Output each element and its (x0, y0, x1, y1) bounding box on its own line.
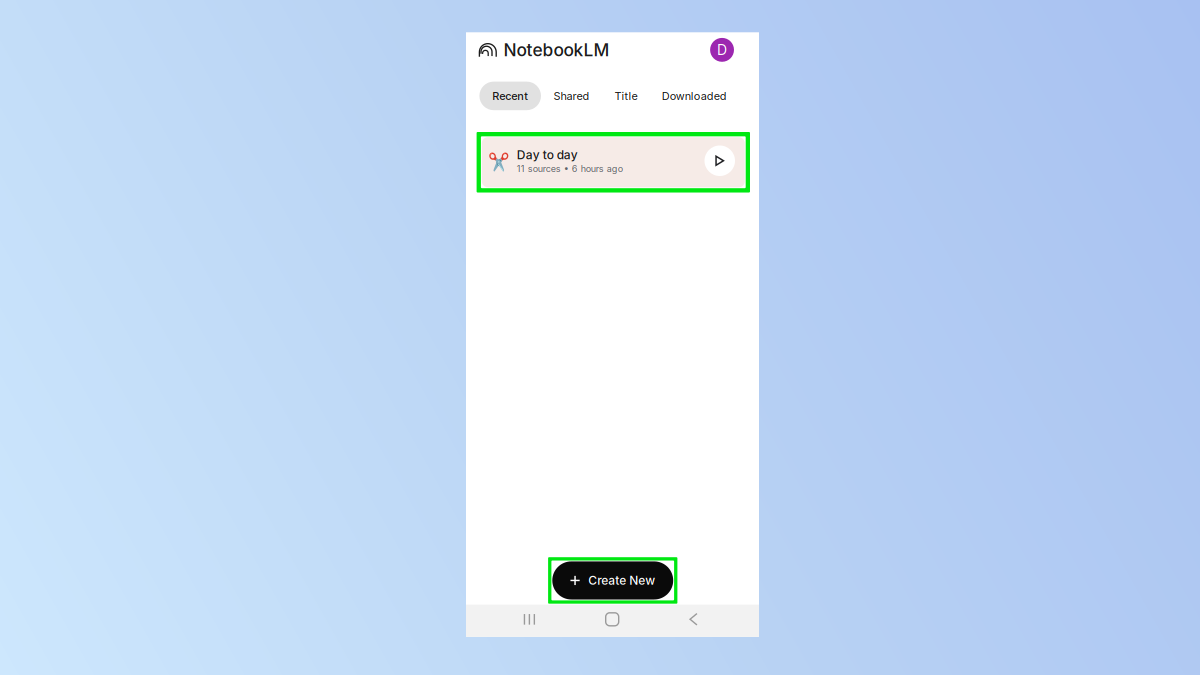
button[interactable]: Title (602, 82, 650, 110)
button[interactable]: Account (710, 38, 734, 62)
staticText: Create New (588, 573, 655, 588)
staticText: 11 sources • 6 hours ago (517, 163, 623, 174)
staticText: Title (614, 89, 637, 102)
button[interactable]: Recents (506, 605, 552, 634)
button[interactable]: Downloaded (650, 82, 739, 110)
button[interactable]: Create New (548, 557, 677, 604)
button[interactable]: Back (672, 605, 718, 634)
staticText: ✂️ (488, 152, 510, 172)
staticText: D (717, 41, 727, 58)
staticText: Recent (492, 89, 528, 102)
button[interactable]: Recent (479, 82, 541, 110)
button[interactable]: ✂️ (477, 132, 750, 192)
staticText: Day to day (517, 148, 578, 162)
staticText: NotebookLM (504, 39, 610, 60)
staticText: Shared (554, 89, 590, 102)
staticText: Downloaded (662, 89, 727, 102)
button[interactable]: Home (589, 605, 635, 634)
button[interactable]: Shared (541, 82, 602, 110)
